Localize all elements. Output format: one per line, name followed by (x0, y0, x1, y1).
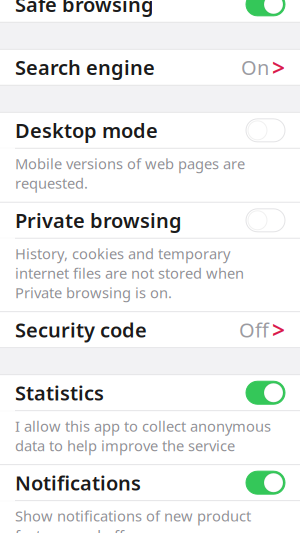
button[interactable]: Notifications (0, 465, 300, 500)
staticText: Desktop mode (15, 117, 158, 144)
staticText: Search engine (15, 54, 155, 81)
staticText: I allow this app to collect anonymous da… (15, 416, 271, 455)
staticText: Show notifications of new product featur… (15, 506, 251, 533)
staticText: Off (239, 316, 269, 343)
button[interactable]: Private browsing (0, 203, 300, 238)
staticText: Mobile versions of web pages are request… (15, 154, 245, 193)
staticText: Notifications (15, 469, 141, 496)
staticText: Private browsing (15, 207, 182, 234)
button[interactable]: Safe browsing (0, 0, 300, 22)
button[interactable]: Search engine (0, 50, 300, 85)
staticText: > (272, 315, 285, 345)
staticText: Safe browsing (15, 0, 154, 18)
staticText: > (272, 52, 285, 82)
button[interactable]: Desktop mode (0, 113, 300, 148)
staticText: History, cookies and temporary internet … (15, 244, 244, 302)
button[interactable]: Security code (0, 312, 300, 347)
button[interactable]: Statistics (0, 375, 300, 410)
staticText: Security code (15, 316, 147, 343)
staticText (269, 323, 272, 337)
staticText: On (241, 54, 269, 81)
staticText: Statistics (15, 379, 104, 406)
